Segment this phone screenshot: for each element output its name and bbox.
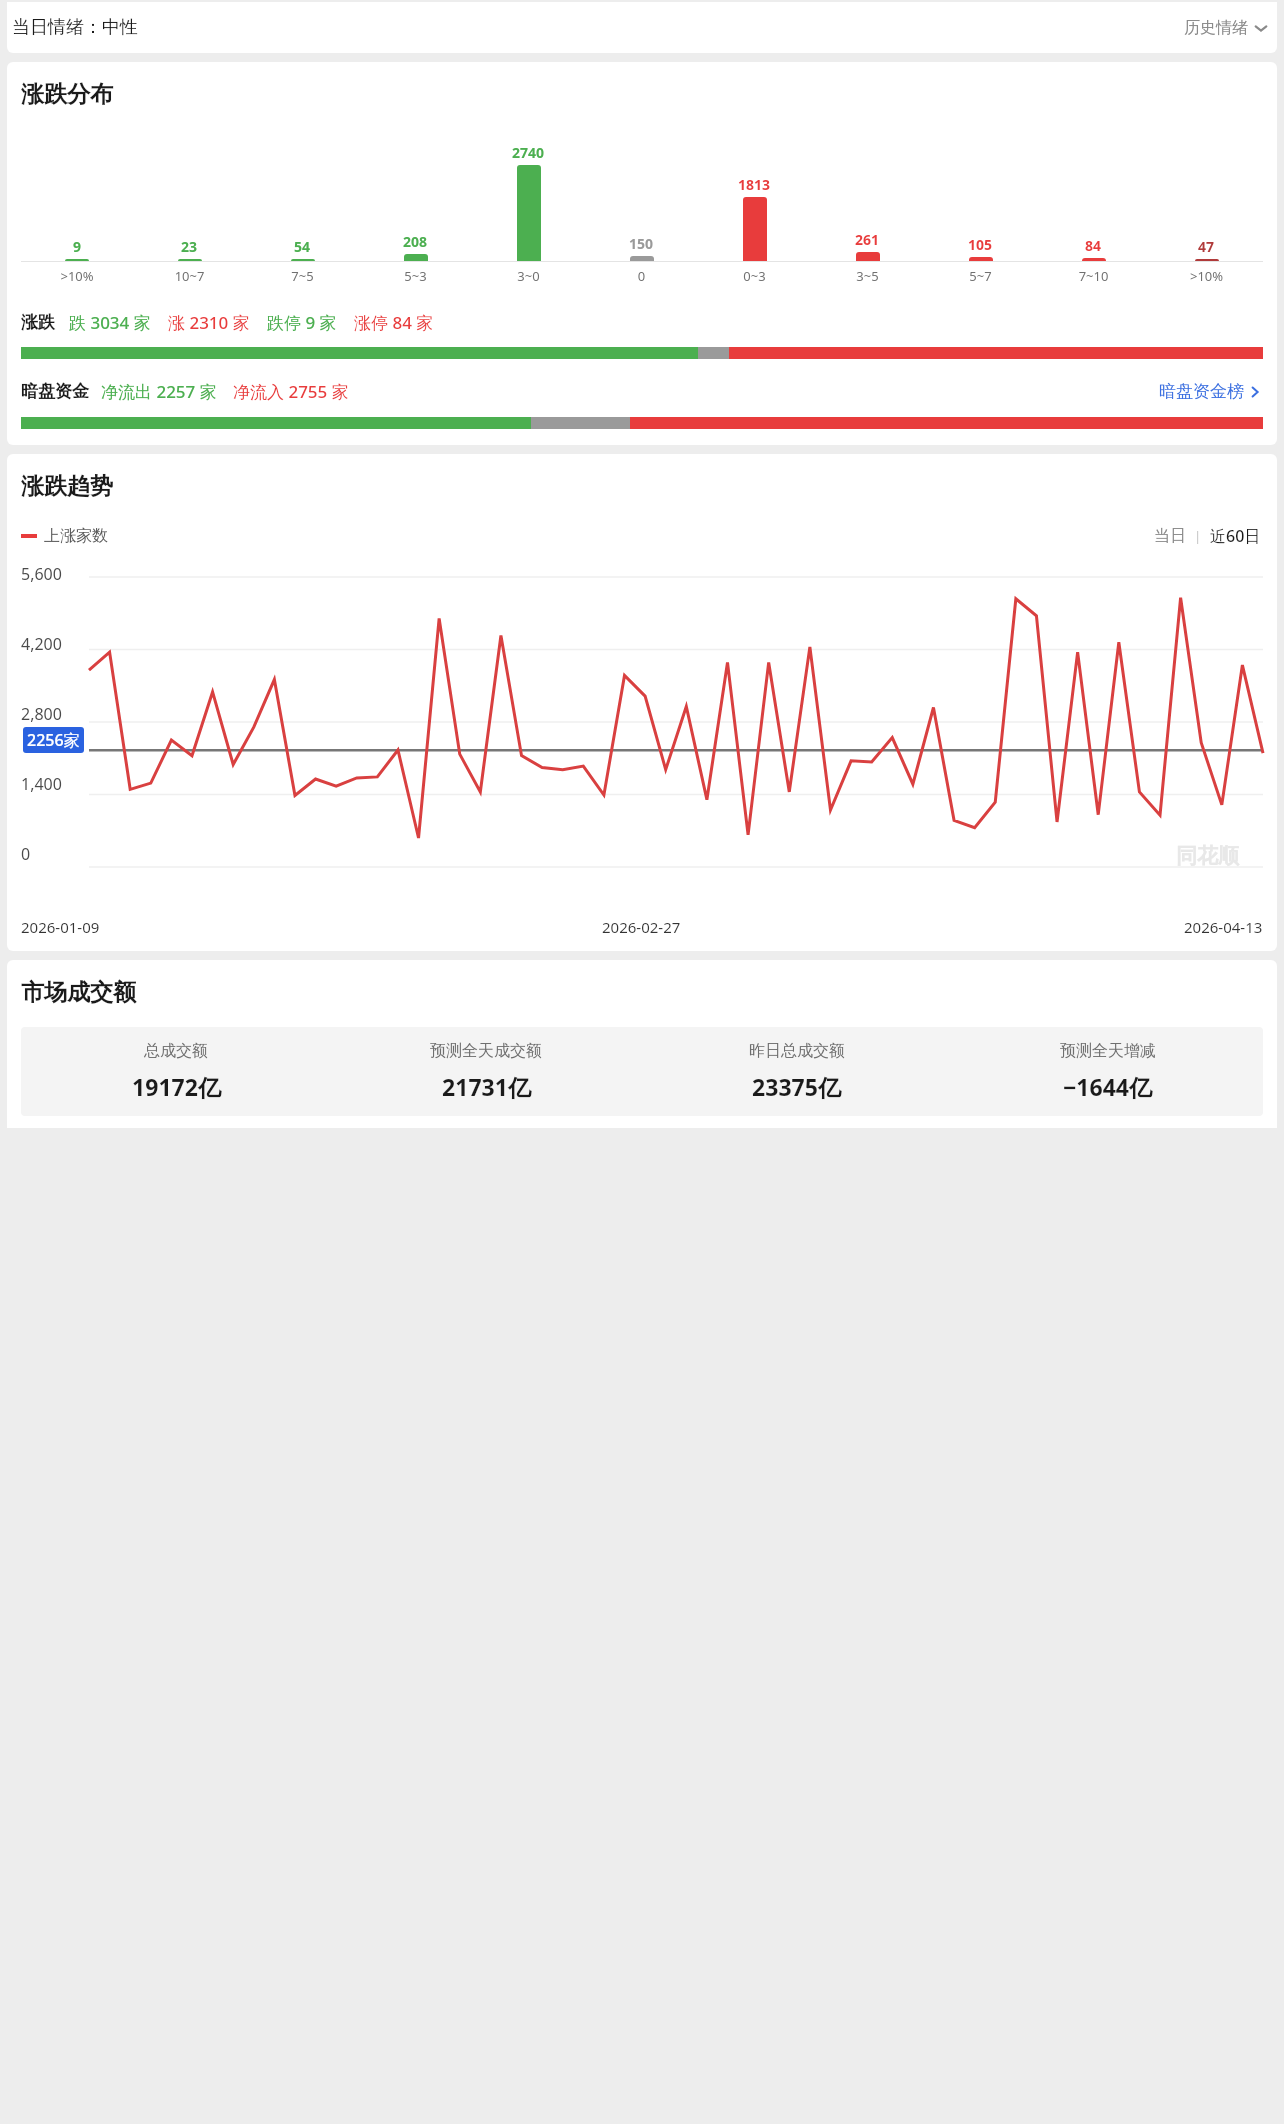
staticText: 23 [181, 237, 198, 256]
staticText: 当日 [1154, 526, 1186, 546]
staticText: 2026-04-13 [1184, 917, 1263, 937]
staticText: 0 [21, 843, 31, 865]
staticText: 净流出 2257 家 [101, 380, 217, 403]
staticText: | [1194, 527, 1202, 545]
staticText: 暗盘资金榜 [1159, 381, 1244, 402]
staticText: >10% [1150, 267, 1263, 285]
staticText: 7~10 [1037, 267, 1150, 285]
staticText: 19172亿 [132, 1071, 221, 1102]
staticText: >10% [21, 267, 133, 285]
staticText: 跌停 9 家 [267, 311, 337, 334]
staticText: 208 [403, 232, 428, 251]
staticText: 3~0 [472, 267, 585, 285]
staticText: 2740 [512, 143, 545, 162]
staticText: 2026-01-09 [21, 917, 100, 937]
staticText: 预测全天成交额 [430, 1041, 542, 1061]
staticText: 54 [294, 237, 311, 256]
staticText: 5,600 [21, 563, 62, 585]
staticText: 5~3 [359, 267, 472, 285]
staticText: 净流入 2755 家 [233, 380, 349, 403]
staticText: 涨跌趋势 [21, 472, 113, 501]
staticText: 1,400 [21, 773, 62, 795]
staticText: 21731亿 [442, 1071, 531, 1102]
staticText: 0~3 [698, 267, 811, 285]
staticText: 市场成交额 [21, 978, 136, 1007]
staticText: 暗盘资金 [21, 381, 89, 402]
button[interactable]: 历史情绪 [1180, 14, 1272, 42]
staticText: 总成交额 [144, 1041, 208, 1061]
staticText: 涨停 84 家 [354, 311, 434, 334]
staticText: 2026-02-27 [602, 917, 681, 937]
staticText: 预测全天增减 [1060, 1041, 1156, 1061]
staticText: 历史情绪 [1184, 18, 1248, 38]
button[interactable]: 近60日 [1208, 523, 1263, 549]
staticText: 23375亿 [752, 1071, 841, 1102]
staticText: 涨跌分布 [21, 80, 113, 109]
button[interactable]: 暗盘资金榜 [1157, 379, 1263, 404]
button[interactable]: 当日 [1152, 524, 1188, 548]
staticText: 跌 3034 家 [69, 311, 151, 334]
staticText: 84 [1085, 236, 1102, 255]
staticText: 150 [629, 234, 654, 253]
staticText: 105 [968, 235, 993, 254]
staticText: 0 [585, 267, 698, 285]
staticText: −1644亿 [1063, 1071, 1152, 1102]
staticText: 5~7 [924, 267, 1037, 285]
staticText: 10~7 [133, 267, 246, 285]
staticText: 261 [855, 230, 880, 249]
staticText: 昨日总成交额 [749, 1041, 845, 1061]
staticText: 2256家 [27, 729, 80, 751]
staticText: 涨跌 [21, 312, 55, 333]
staticText: 4,200 [21, 633, 62, 655]
staticText: 上涨家数 [44, 526, 108, 546]
staticText: 同花顺 [1176, 843, 1239, 869]
staticText: 3~5 [811, 267, 924, 285]
staticText: 9 [73, 237, 82, 256]
staticText: 1813 [738, 175, 771, 194]
staticText: 近60日 [1210, 525, 1261, 547]
staticText: 2,800 [21, 703, 62, 725]
staticText: 47 [1198, 237, 1215, 256]
staticText: 当日情绪：中性 [12, 16, 138, 39]
staticText: 7~5 [246, 267, 359, 285]
staticText: 涨 2310 家 [168, 311, 250, 334]
